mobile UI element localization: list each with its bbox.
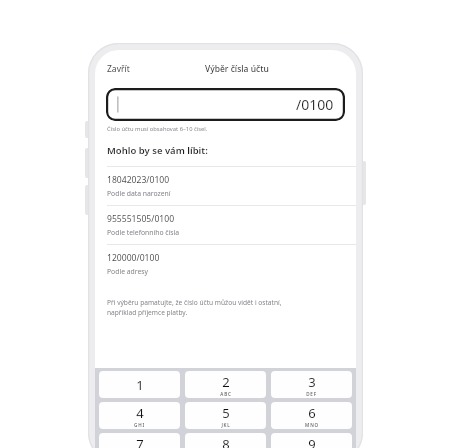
button[interactable]: 120000/0100 xyxy=(95,245,356,283)
button[interactable]: 1 xyxy=(99,371,180,398)
button[interactable]: 3 xyxy=(271,371,352,398)
button[interactable]: 955551505/0100 xyxy=(95,206,356,244)
staticText: Podle adresy xyxy=(107,267,148,276)
staticText: Podle telefonního čísla xyxy=(107,228,180,237)
staticText: 7 xyxy=(136,435,144,448)
staticText: 955551505/0100 xyxy=(107,213,175,225)
staticText: 18042023/0100 xyxy=(107,174,170,186)
button[interactable]: 5 xyxy=(185,402,266,429)
staticText: JKL xyxy=(221,422,231,428)
button[interactable]: 9 xyxy=(271,433,352,448)
button[interactable]: 6 xyxy=(271,402,352,429)
staticText: Při výběru pamatujte, že číslo účtu můžo… xyxy=(107,298,282,317)
staticText: MNO xyxy=(305,422,319,428)
staticText: 9 xyxy=(308,435,316,448)
staticText: DEF xyxy=(306,391,317,397)
staticText: 1 xyxy=(136,376,144,394)
staticText: 3 xyxy=(308,373,316,391)
button[interactable]: 7 xyxy=(99,433,180,448)
button[interactable]: /0100 xyxy=(106,88,345,121)
button[interactable]: Zavřít xyxy=(104,59,133,79)
staticText: Zavřít xyxy=(107,63,130,75)
staticText: Mohlo by se vám líbit: xyxy=(107,144,208,157)
staticText: GHI xyxy=(134,422,145,428)
button[interactable]: 18042023/0100 xyxy=(95,167,356,205)
staticText: Číslo účtu musí obsahovat 6–10 čísel. xyxy=(107,125,208,133)
staticText: 120000/0100 xyxy=(107,252,160,264)
button[interactable]: 8 xyxy=(185,433,266,448)
button[interactable]: 4 xyxy=(99,402,180,429)
staticText: ABC xyxy=(220,391,232,397)
staticText: /0100 xyxy=(296,95,334,114)
staticText: 8 xyxy=(222,435,230,448)
button[interactable]: 2 xyxy=(185,371,266,398)
staticText: 6 xyxy=(308,404,316,422)
staticText: 2 xyxy=(222,373,230,391)
staticText: Podle data narození xyxy=(107,189,171,198)
staticText: 4 xyxy=(136,404,144,422)
staticText: 5 xyxy=(222,404,230,422)
staticText: Výběr čísla účtu xyxy=(205,63,269,75)
